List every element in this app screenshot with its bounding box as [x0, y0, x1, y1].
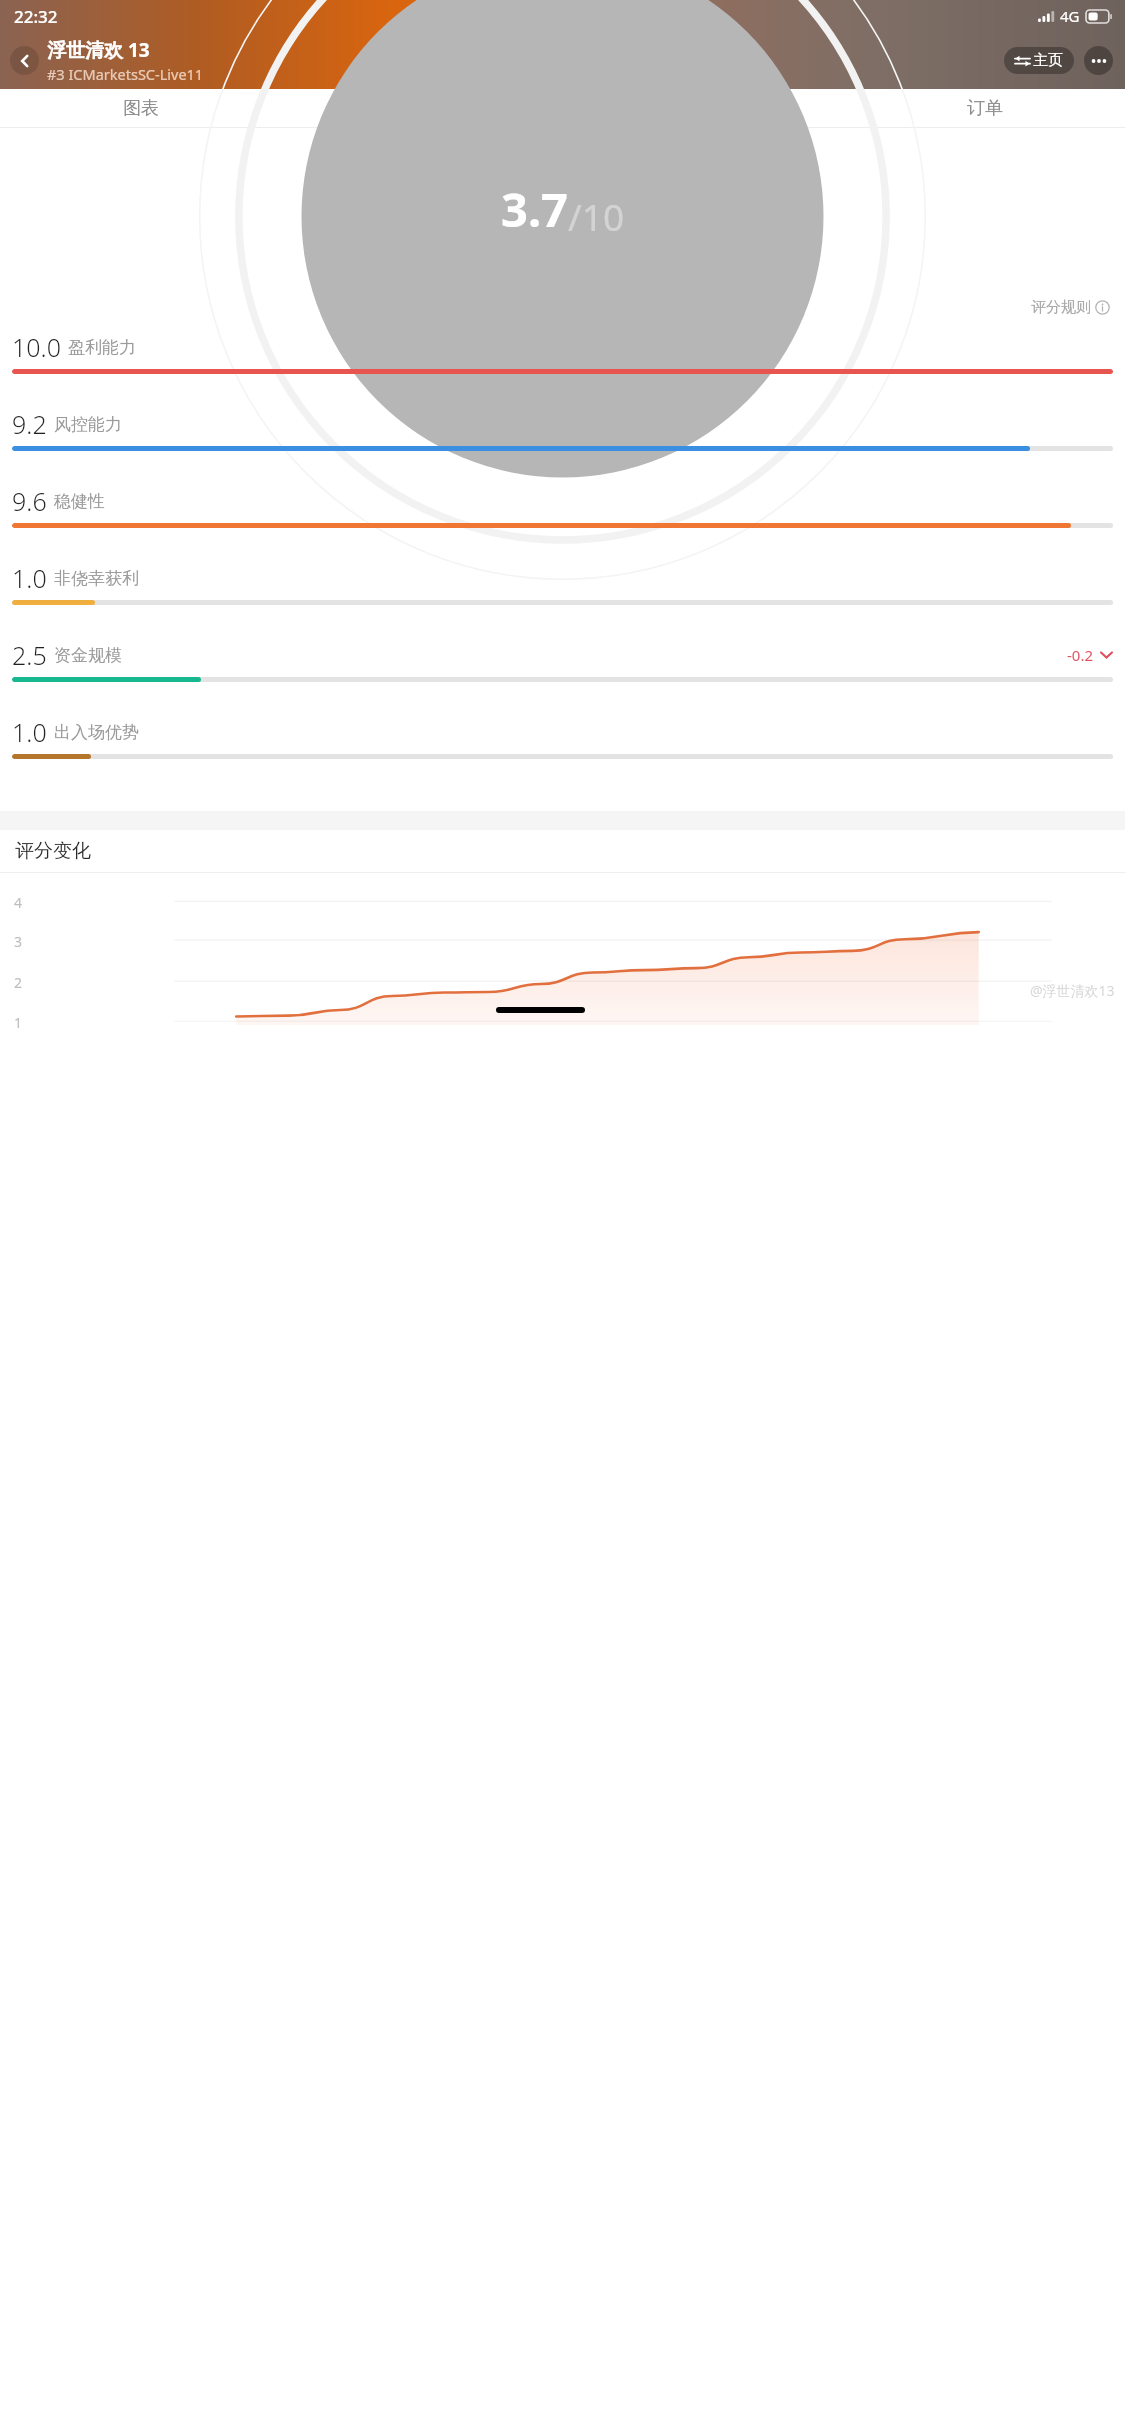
staticText: -0.2: [1067, 645, 1094, 665]
button[interactable]: More options: [1084, 46, 1113, 75]
staticText: @浮世清欢13: [1030, 981, 1115, 1000]
staticText: 风控能力: [54, 414, 122, 435]
button[interactable]: 9.6: [0, 484, 1125, 561]
staticText: 浮世清欢 13: [47, 37, 150, 63]
staticText: 4: [14, 893, 23, 912]
staticText: 3.7: [501, 177, 568, 241]
button[interactable]: 评分: [282, 89, 563, 128]
staticText: 22:32: [14, 5, 58, 28]
staticText: 2: [14, 973, 23, 992]
staticText: 非侥幸获利: [54, 568, 139, 589]
button[interactable]: 主页: [1004, 47, 1074, 74]
staticText: 10.0: [12, 330, 61, 364]
button[interactable]: 1.0: [0, 561, 1125, 638]
staticText: 1: [14, 1013, 23, 1032]
button[interactable]: 订阅: [563, 89, 844, 128]
staticText: 资金规模: [54, 645, 122, 666]
button[interactable]: 评分规则: [1031, 298, 1110, 317]
button[interactable]: 9.2: [0, 407, 1125, 484]
button[interactable]: Back: [10, 46, 39, 75]
staticText: 3: [14, 932, 23, 951]
staticText: 出入场优势: [54, 722, 139, 743]
button[interactable]: 1.0: [0, 715, 1125, 792]
staticText: 9.6: [12, 484, 47, 518]
staticText: 图表: [123, 97, 159, 120]
button[interactable]: 2.5: [0, 638, 1125, 715]
staticText: 评分变化: [15, 839, 91, 863]
staticText: 2.5: [12, 638, 47, 672]
button[interactable]: 10.0: [0, 330, 1125, 407]
staticText: 稳健性: [54, 491, 105, 512]
button[interactable]: 图表: [0, 89, 282, 128]
staticText: 9.2: [12, 407, 47, 441]
staticText: 评分规则: [1031, 298, 1091, 317]
staticText: 1.0: [12, 715, 47, 749]
staticText: /10: [568, 191, 625, 241]
staticText: 主页: [1033, 51, 1063, 70]
staticText: 4G: [1060, 6, 1080, 26]
staticText: 订单: [967, 97, 1003, 120]
staticText: 1.0: [12, 561, 47, 595]
button[interactable]: 订单: [844, 89, 1125, 128]
staticText: #3 ICMarketsSC-Live11: [47, 64, 204, 84]
staticText: 盈利能力: [68, 337, 136, 358]
